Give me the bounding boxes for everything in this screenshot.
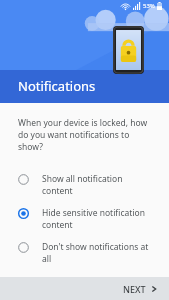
staticText: Show all notification content: [42, 173, 155, 197]
staticText: Don't show notifications at all: [42, 241, 155, 265]
button[interactable]: Hide sensitive notification content: [0, 202, 169, 236]
staticText: Hide sensitive notification content: [42, 207, 155, 231]
staticText: 53%: [143, 2, 155, 10]
staticText: Notifications: [18, 77, 96, 95]
button[interactable]: Don't show notifications at all: [0, 236, 169, 270]
button[interactable]: Show all notification content: [0, 168, 169, 202]
staticText: When your device is locked, how do you w…: [18, 117, 153, 153]
button[interactable]: NEXT: [111, 279, 169, 299]
staticText: NEXT: [123, 283, 146, 295]
